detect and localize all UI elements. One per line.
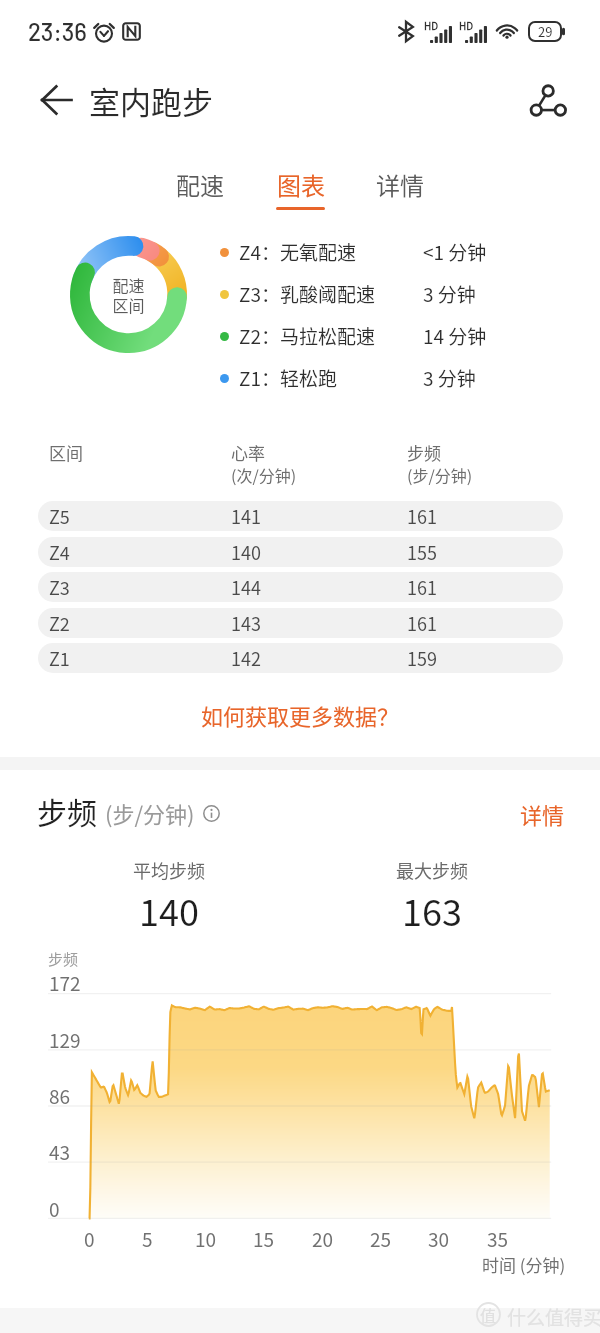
staticText: (步/分钟): [407, 463, 473, 486]
staticText: 142: [231, 645, 261, 671]
staticText: 什么值得买: [507, 1303, 600, 1331]
staticText: 161: [407, 503, 437, 529]
staticText: 步频: [37, 789, 97, 832]
button[interactable]: Z4：无氧配速: [215, 235, 545, 269]
button[interactable]: 详情: [360, 160, 440, 216]
button[interactable]: Z1: [38, 643, 563, 673]
staticText: 10: [195, 1225, 217, 1253]
staticText: 140: [231, 539, 261, 565]
staticText: 3 分钟: [423, 364, 476, 392]
staticText: Z2: [49, 610, 70, 636]
staticText: Z1：轻松跑: [239, 364, 338, 392]
staticText: 161: [407, 610, 437, 636]
staticText: 86: [49, 1082, 71, 1110]
staticText: 值: [480, 1303, 497, 1326]
staticText: 0: [49, 1195, 60, 1223]
staticText: 区间: [49, 440, 83, 465]
staticText: 144: [231, 574, 261, 600]
staticText: 最大步频: [396, 857, 468, 883]
staticText: 时间 (分钟): [482, 1252, 566, 1277]
staticText: Z1: [49, 645, 70, 671]
staticText: 161: [407, 574, 437, 600]
staticText: 35: [487, 1225, 509, 1253]
staticText: 43: [49, 1138, 71, 1166]
staticText: Z4：无氧配速: [239, 238, 357, 266]
staticText: 步频: [48, 948, 79, 970]
staticText: Z5: [49, 503, 70, 529]
staticText: 25: [370, 1225, 392, 1253]
staticText: Z3: [49, 574, 70, 600]
staticText: 159: [407, 645, 437, 671]
staticText: HD: [424, 18, 439, 32]
staticText: 配速 区间: [112, 273, 145, 317]
staticText: 图表: [277, 167, 325, 202]
button[interactable]: 配速: [160, 160, 240, 216]
staticText: 140: [139, 884, 199, 936]
staticText: 15: [253, 1225, 275, 1253]
staticText: 163: [402, 884, 462, 936]
staticText: 129: [49, 1026, 81, 1054]
staticText: 29: [538, 22, 553, 41]
button[interactable]: Z2: [38, 608, 563, 638]
staticText: 20: [312, 1225, 334, 1253]
button[interactable]: 如何获取更多数据？: [0, 699, 600, 731]
staticText: 平均步频: [133, 857, 205, 883]
staticText: <1 分钟: [423, 238, 487, 266]
staticText: 5: [142, 1225, 153, 1253]
staticText: 详情: [376, 167, 424, 202]
staticText: Z3：乳酸阈配速: [239, 280, 376, 308]
staticText: 23:36: [28, 17, 87, 46]
button[interactable]: Z4: [38, 537, 563, 567]
button[interactable]: 详情: [511, 796, 573, 832]
staticText: 配速: [176, 167, 224, 202]
button[interactable]: Z1：轻松跑: [215, 361, 545, 395]
staticText: 室内跑步: [89, 78, 213, 123]
button[interactable]: Z2：马拉松配速: [215, 319, 545, 353]
staticText: Z4: [49, 539, 70, 565]
staticText: 心率: [231, 440, 265, 465]
button[interactable]: Z5: [38, 501, 563, 531]
button[interactable]: Z3：乳酸阈配速: [215, 277, 545, 311]
staticText: 步频: [407, 440, 441, 465]
staticText: 155: [407, 539, 437, 565]
staticText: 172: [49, 969, 81, 997]
button[interactable]: Back: [32, 76, 80, 124]
staticText: 0: [84, 1225, 95, 1253]
button[interactable]: 图表: [260, 160, 340, 216]
staticText: Z2：马拉松配速: [239, 322, 376, 350]
button[interactable]: Share: [521, 74, 573, 126]
staticText: 14 分钟: [423, 322, 487, 350]
staticText: 143: [231, 610, 261, 636]
staticText: HD: [459, 18, 474, 32]
staticText: 3 分钟: [423, 280, 476, 308]
staticText: 详情: [520, 798, 565, 830]
staticText: 141: [231, 503, 261, 529]
staticText: 如何获取更多数据？: [201, 699, 400, 731]
staticText: 30: [428, 1225, 450, 1253]
staticText: (步/分钟): [105, 797, 195, 829]
staticText: (次/分钟): [231, 463, 297, 486]
button[interactable]: Z3: [38, 572, 563, 602]
